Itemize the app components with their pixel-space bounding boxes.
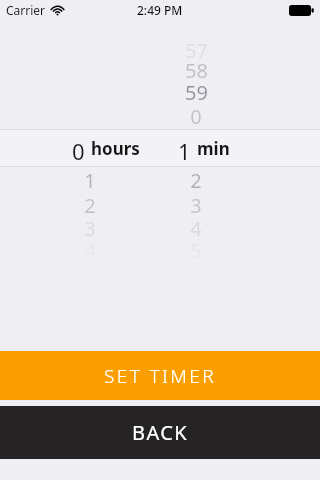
staticText: SET TIMER [104, 363, 216, 389]
staticText: 0 [190, 103, 202, 130]
staticText: 4 [190, 215, 202, 242]
other: Battery full [289, 5, 314, 16]
other: Wi-Fi signal [51, 4, 64, 17]
staticText: 3 [84, 215, 96, 242]
button[interactable]: 0 [72, 136, 140, 160]
staticText: BACK [132, 419, 188, 446]
staticText: Carrier [6, 2, 46, 18]
button[interactable]: 1 [178, 136, 230, 160]
staticText: 1 [178, 136, 191, 160]
staticText: 1 [84, 167, 96, 194]
staticText: 0 [72, 136, 85, 160]
button[interactable]: BACK [0, 406, 320, 459]
staticText: 2 [84, 192, 96, 219]
staticText: hours [91, 137, 140, 160]
staticText: 59 [185, 79, 208, 106]
staticText: 57 [185, 37, 208, 64]
staticText: min [197, 137, 230, 160]
staticText: 2:49 PM [137, 2, 183, 18]
button[interactable]: SET TIMER [0, 351, 320, 400]
staticText: 3 [190, 192, 202, 219]
staticText: 2 [190, 167, 202, 194]
staticText: 58 [185, 57, 208, 84]
